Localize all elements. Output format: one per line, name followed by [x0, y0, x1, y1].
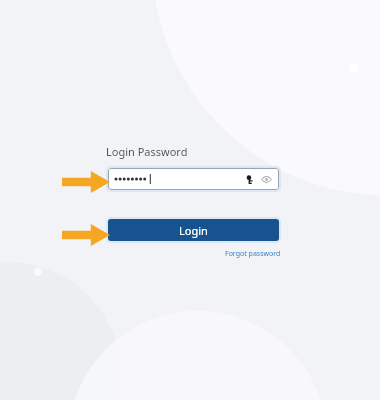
button[interactable]: Password manager: [108, 168, 279, 190]
button[interactable]: Show password: [260, 173, 272, 185]
other: Pointer to Login button: [62, 224, 110, 246]
button[interactable]: Forgot password: [225, 249, 281, 259]
button[interactable]: Login: [108, 219, 279, 241]
other: Pointer to password field: [62, 171, 110, 193]
staticText: Login: [179, 223, 208, 238]
staticText: Login Password: [106, 144, 188, 159]
button[interactable]: Password manager: [244, 173, 256, 185]
